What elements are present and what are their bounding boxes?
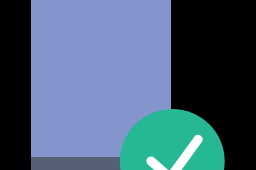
button[interactable]: Profile	[126, 157, 166, 170]
button[interactable]: Search	[81, 157, 121, 170]
button[interactable]: Confirm	[120, 108, 225, 170]
